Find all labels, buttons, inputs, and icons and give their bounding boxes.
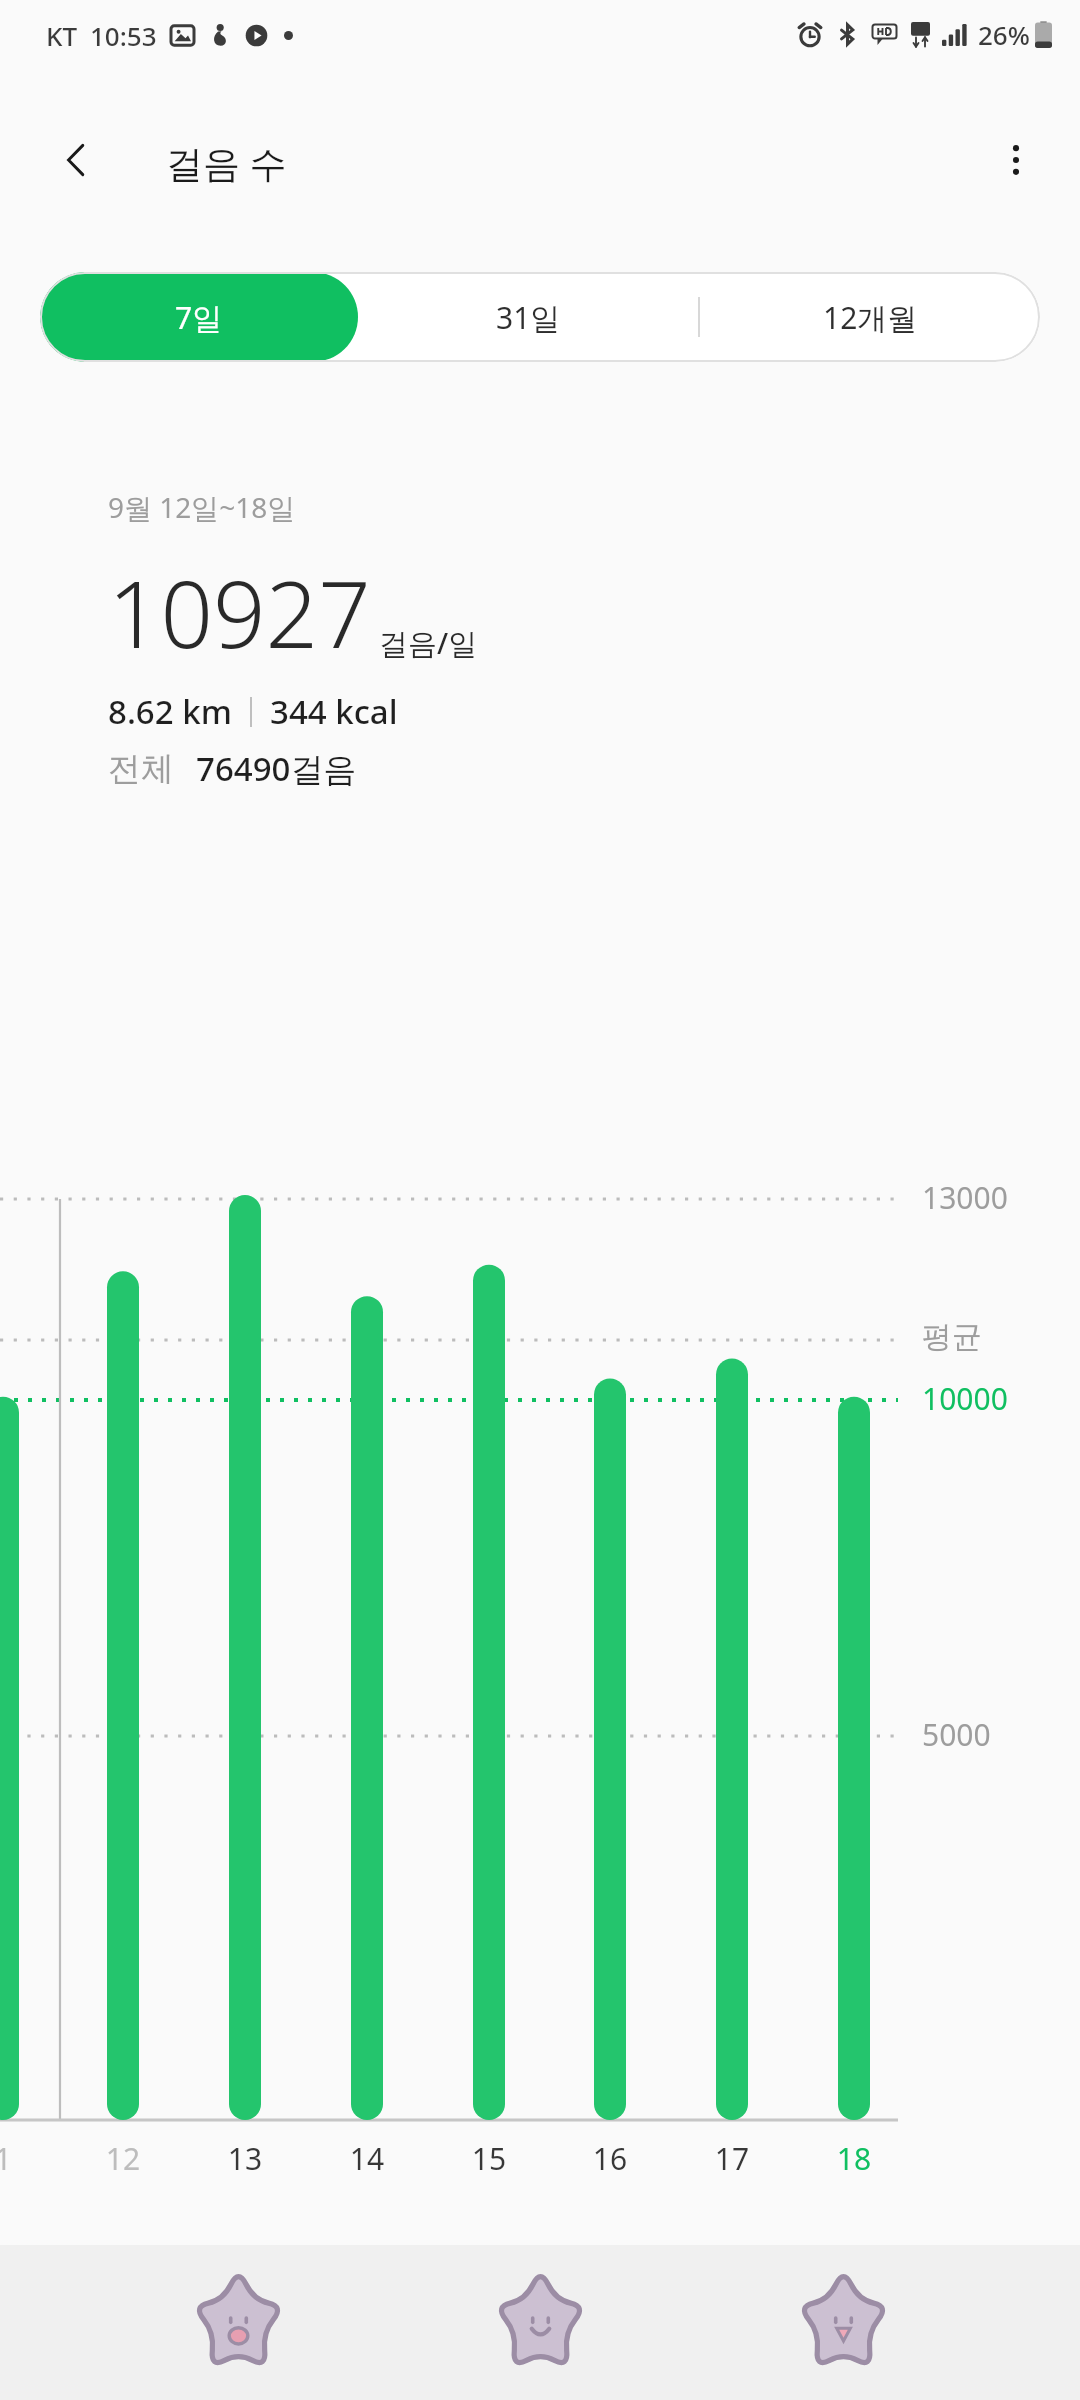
staticText: 평균 (922, 1318, 982, 1356)
staticText: 31일 (496, 297, 561, 338)
staticText: 걸음 수 (166, 137, 287, 188)
button[interactable]: 31일 (358, 272, 698, 362)
staticText: 17 (692, 2138, 772, 2179)
button[interactable]: 7일 (40, 272, 358, 362)
button[interactable]: Home (475, 2258, 605, 2388)
staticText: 15 (449, 2138, 529, 2179)
staticText: 10000 (922, 1378, 1008, 1419)
staticText: 9월 12일~18일 (108, 488, 296, 526)
button[interactable]: Back (778, 2258, 908, 2388)
staticText: 13 (205, 2138, 285, 2179)
staticText: 26% (978, 17, 1030, 52)
staticText: 12 (83, 2138, 163, 2179)
staticText: 12개월 (823, 297, 918, 338)
staticText: 18 (814, 2138, 894, 2179)
staticText: 16 (570, 2138, 650, 2179)
staticText: 13000 (922, 1177, 1008, 1218)
staticText: 14 (327, 2138, 407, 2179)
staticText: 걸음/일 (379, 623, 478, 663)
button[interactable]: More options (976, 120, 1056, 200)
button[interactable]: Back (36, 120, 116, 200)
staticText: 344 kcal (270, 689, 398, 734)
staticText: 8.62 km (108, 689, 232, 734)
staticText: 76490걸음 (196, 746, 357, 791)
staticText: 전체 (108, 748, 174, 790)
staticText: 10:53 (90, 18, 157, 53)
staticText: 1 (0, 2138, 43, 2179)
button[interactable]: 12개월 (700, 272, 1040, 362)
button[interactable]: Recent apps (173, 2258, 303, 2388)
staticText: KT (46, 18, 78, 53)
staticText: 10927 (108, 550, 371, 675)
staticText: 7일 (175, 297, 223, 338)
staticText: 5000 (922, 1714, 991, 1755)
